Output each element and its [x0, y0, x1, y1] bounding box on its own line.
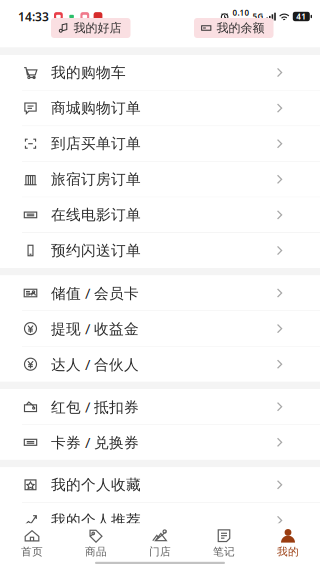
staticText: 0.10 [232, 7, 249, 18]
button[interactable]: 商品 [64, 523, 128, 562]
button[interactable]: 红包 / 抵扣券 [0, 389, 320, 424]
staticText: 商品 [85, 545, 107, 558]
staticText: 14:33 [18, 8, 49, 24]
button[interactable]: 预约闪送订单 [0, 233, 320, 268]
staticText: 我的个人推荐 [51, 511, 141, 529]
staticText: 我的余额 [216, 21, 264, 35]
button[interactable]: 我的购物车 [0, 55, 320, 90]
button[interactable]: 商城购物订单 [0, 91, 320, 126]
button[interactable]: 我的个人收藏 [0, 467, 320, 502]
button[interactable]: 旅宿订房订单 [0, 162, 320, 197]
staticText: 达人 / 合伙人 [51, 354, 139, 374]
staticText: 我的个人收藏 [51, 476, 141, 494]
staticText: 提现 / 收益金 [51, 319, 139, 338]
staticText: 储值 / 会员卡 [51, 283, 139, 303]
button[interactable]: 笔记 [192, 523, 256, 562]
staticText: 红包 / 抵扣券 [51, 397, 139, 416]
staticText: 预约闪送订单 [51, 241, 141, 259]
staticText: 在线电影订单 [51, 206, 141, 224]
staticText: 旅宿订房订单 [51, 170, 141, 188]
staticText: 我的 [277, 545, 299, 558]
button[interactable]: 首页 [0, 523, 64, 562]
button[interactable]: 卡券 / 兑换券 [0, 425, 320, 460]
staticText: 首页 [21, 545, 43, 558]
button[interactable]: 在线电影订单 [0, 197, 320, 232]
staticText: 笔记 [213, 545, 235, 558]
button[interactable]: 门店 [128, 523, 192, 562]
button[interactable]: 储值 / 会员卡 [0, 275, 320, 310]
button[interactable]: 我的个人推荐 [0, 503, 320, 538]
button[interactable]: 我的余额 [194, 18, 273, 38]
staticText: 41 [296, 11, 306, 22]
staticText: 卡券 / 兑换券 [51, 433, 139, 452]
button[interactable]: 到店买单订单 [0, 126, 320, 161]
staticText: 我的好店 [73, 21, 121, 35]
staticText: 商城购物订单 [51, 99, 141, 117]
staticText: KB/s [234, 17, 247, 26]
button[interactable]: 我的好店 [51, 18, 130, 38]
button[interactable]: 我的 [256, 523, 320, 562]
staticText: 到店买单订单 [51, 135, 141, 153]
button[interactable]: 提现 / 收益金 [0, 311, 320, 346]
staticText: 5G [252, 11, 263, 22]
button[interactable]: 达人 / 合伙人 [0, 347, 320, 382]
staticText: 门店 [149, 545, 171, 558]
staticText: 我的购物车 [51, 63, 126, 81]
